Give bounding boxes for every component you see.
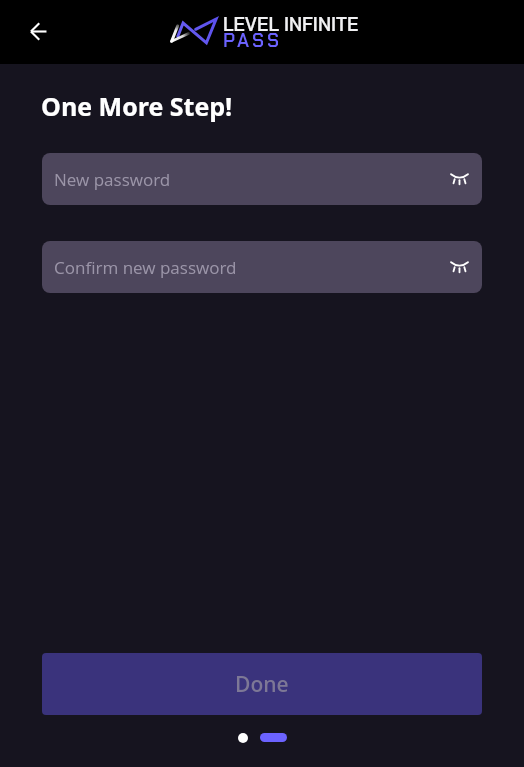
staticText: New password: [54, 168, 171, 191]
staticText: PASS: [223, 28, 283, 53]
button[interactable]: Back: [16, 9, 60, 53]
button[interactable]: Show password: [441, 161, 477, 197]
staticText: Confirm new password: [54, 256, 237, 279]
button[interactable]: Confirm new password: [42, 241, 482, 293]
staticText: Done: [235, 670, 289, 699]
staticText: LEVEL INFINITE: [223, 12, 359, 37]
button[interactable]: Show password: [441, 249, 477, 285]
staticText: One More Step!: [41, 89, 233, 123]
button[interactable]: Done: [42, 653, 482, 715]
button[interactable]: New password: [42, 153, 482, 205]
